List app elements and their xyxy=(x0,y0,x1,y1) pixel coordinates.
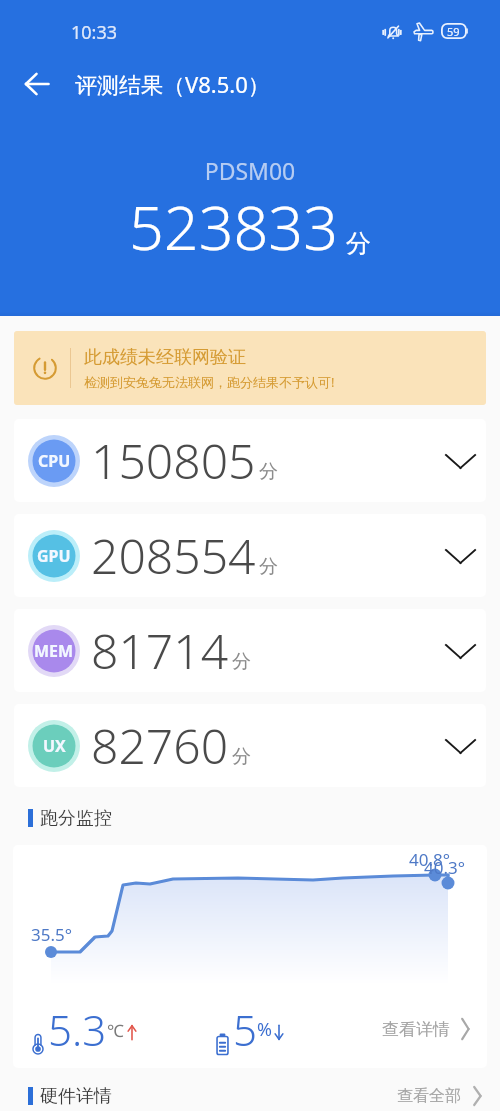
button[interactable]: Expand xyxy=(436,627,484,675)
button[interactable]: CPU xyxy=(14,419,486,502)
staticText: 10:33 xyxy=(71,20,118,45)
staticText: 35.5° xyxy=(31,923,73,946)
staticText: 82760 xyxy=(91,713,229,778)
staticText: 59 xyxy=(447,24,460,39)
staticText: GPU xyxy=(37,545,71,567)
button[interactable]: Expand xyxy=(436,722,484,770)
staticText: 523833 xyxy=(129,185,338,268)
button[interactable]: Expand xyxy=(436,437,484,485)
staticText: 检测到安兔兔无法联网，跑分结果不予认可! xyxy=(84,373,335,391)
button[interactable]: 此成绩未经联网验证 xyxy=(14,331,486,405)
staticText: ℃ xyxy=(107,1019,124,1042)
staticText: 208554 xyxy=(91,523,256,588)
staticText: 分 xyxy=(232,745,251,769)
staticText: 此成绩未经联网验证 xyxy=(84,346,246,369)
staticText: 评测结果（V8.5.0） xyxy=(75,69,270,99)
button[interactable]: Back xyxy=(13,60,61,108)
button[interactable]: 查看全部 xyxy=(397,1081,487,1111)
staticText: 查看全部 xyxy=(397,1086,461,1106)
staticText: 查看详情 xyxy=(382,1019,450,1040)
staticText: 分 xyxy=(259,460,278,484)
staticText: 150805 xyxy=(91,428,256,493)
button[interactable]: MEM xyxy=(14,609,486,692)
button[interactable]: GPU xyxy=(14,514,486,597)
staticText: 分 xyxy=(259,555,278,579)
staticText: 5 xyxy=(233,1001,257,1058)
staticText: 40.8° xyxy=(409,848,451,871)
staticText: 分 xyxy=(346,228,371,259)
staticText: UX xyxy=(43,735,66,757)
staticText: 81714 xyxy=(91,618,229,683)
staticText: CPU xyxy=(38,450,71,472)
button[interactable]: 查看详情 xyxy=(382,1012,475,1046)
staticText: 5.3 xyxy=(48,1001,107,1058)
button[interactable]: Expand xyxy=(436,532,484,580)
staticText: 硬件详情 xyxy=(40,1085,112,1108)
staticText: 跑分监控 xyxy=(40,807,112,830)
button[interactable]: UX xyxy=(14,704,486,787)
staticText: 分 xyxy=(232,650,251,674)
staticText: % xyxy=(257,1017,272,1042)
staticText: PDSM00 xyxy=(0,155,500,186)
staticText: 40.3° xyxy=(424,856,466,879)
staticText: MEM xyxy=(34,640,74,662)
